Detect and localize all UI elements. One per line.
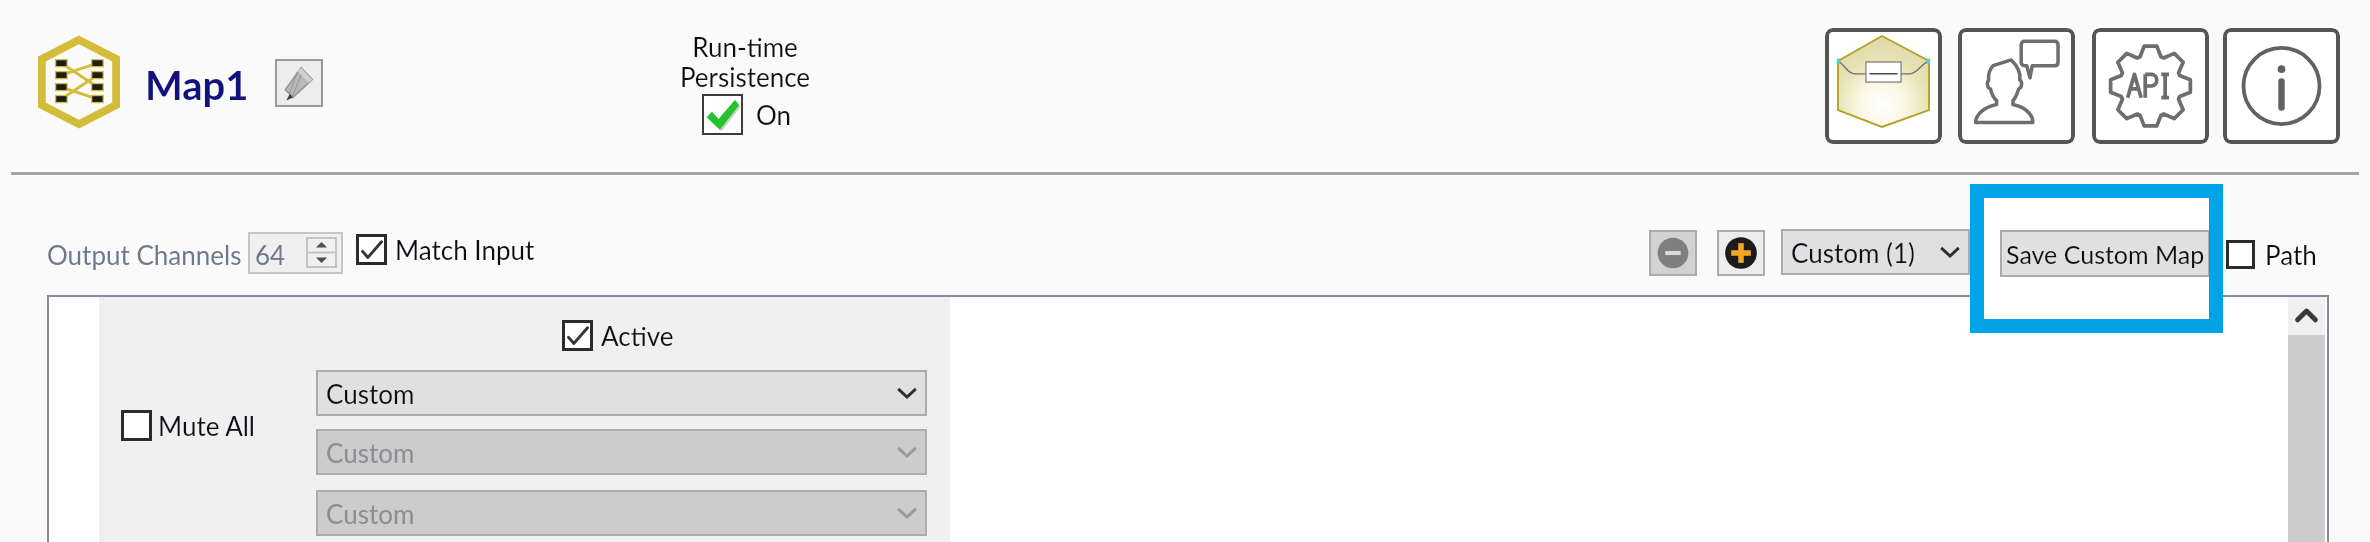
button[interactable]: On <box>702 94 792 135</box>
button[interactable]: Rename map <box>275 59 323 107</box>
button[interactable]: Save Custom Map <box>2000 230 2210 277</box>
staticText: 64 <box>255 239 286 270</box>
staticText: Save Custom Map <box>2006 239 2205 269</box>
staticText: Custom <box>326 437 415 468</box>
button[interactable]: Mute All <box>121 410 255 441</box>
staticText: Custom <box>326 378 415 409</box>
staticText: Map1 <box>145 61 249 109</box>
staticText: Custom <box>326 498 415 529</box>
button[interactable]: Information <box>2223 28 2340 144</box>
button[interactable]: Path <box>2226 239 2317 270</box>
staticText: Path <box>2265 239 2317 270</box>
staticText: Persistence <box>660 61 830 92</box>
staticText: Match Input <box>395 234 535 265</box>
button[interactable]: Map view <box>1825 28 1942 144</box>
button[interactable]: Custom <box>316 370 927 416</box>
button[interactable]: Active <box>562 320 674 351</box>
staticText: Output Channels <box>47 239 242 270</box>
button[interactable]: Add map <box>1717 230 1765 276</box>
staticText: Custom (1) <box>1791 237 1915 268</box>
button[interactable]: Match Input <box>356 234 535 265</box>
button[interactable]: Custom <box>316 490 927 536</box>
button[interactable]: User presets <box>1958 28 2075 144</box>
button[interactable]: Custom (1) <box>1781 229 1970 275</box>
button[interactable]: Remove map <box>1649 230 1697 276</box>
staticText: Mute All <box>158 410 255 441</box>
button[interactable]: API settings <box>2092 28 2209 144</box>
button[interactable]: Scroll up <box>2288 297 2325 335</box>
staticText: Active <box>601 320 674 351</box>
button[interactable]: Custom <box>316 429 927 475</box>
staticText: Run-time <box>660 31 830 62</box>
staticText: On <box>756 99 792 130</box>
button[interactable]: Output channel count <box>248 232 343 274</box>
